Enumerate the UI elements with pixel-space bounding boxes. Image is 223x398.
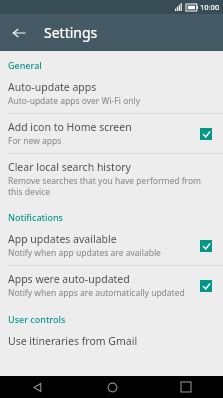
staticText: Remove searches that you have performed … bbox=[8, 175, 216, 197]
staticText: Auto-update apps bbox=[8, 80, 97, 94]
staticText: Clear local search history bbox=[8, 160, 131, 174]
staticText: Settings bbox=[44, 23, 98, 42]
staticText: Use itineraries from Gmail bbox=[8, 334, 138, 348]
staticText: Auto-update apps over Wi-Fi only bbox=[8, 95, 141, 107]
button[interactable]: Home bbox=[75, 376, 149, 398]
staticText: User controls bbox=[8, 313, 66, 325]
button[interactable]: Back bbox=[7, 21, 31, 45]
staticText: General bbox=[8, 59, 42, 71]
button[interactable]: Use itineraries from Gmail bbox=[0, 328, 223, 354]
staticText: 10:00 bbox=[200, 2, 220, 12]
button[interactable]: Auto-update apps bbox=[0, 74, 223, 113]
staticText: Notify when app updates are available bbox=[8, 247, 161, 259]
button[interactable]: App updates available bbox=[0, 226, 223, 265]
button[interactable]: Back bbox=[0, 376, 75, 398]
staticText: Apps were auto-updated bbox=[8, 272, 130, 286]
button[interactable]: Toggle Apps were auto-updated bbox=[196, 276, 216, 296]
button[interactable]: Add icon to Home screen bbox=[0, 114, 223, 153]
staticText: Add icon to Home screen bbox=[8, 120, 132, 134]
button[interactable]: Apps were auto-updated bbox=[0, 266, 223, 305]
button[interactable]: Toggle App updates available bbox=[196, 236, 216, 256]
staticText: App updates available bbox=[8, 232, 117, 246]
staticText: Notifications bbox=[8, 211, 63, 223]
staticText: For new apps bbox=[8, 135, 62, 147]
button[interactable]: Recent apps bbox=[149, 376, 223, 398]
button[interactable]: Toggle Add icon to Home screen bbox=[196, 124, 216, 144]
button[interactable]: Clear local search history bbox=[0, 154, 223, 203]
staticText: Notify when apps are automatically updat… bbox=[8, 287, 185, 299]
